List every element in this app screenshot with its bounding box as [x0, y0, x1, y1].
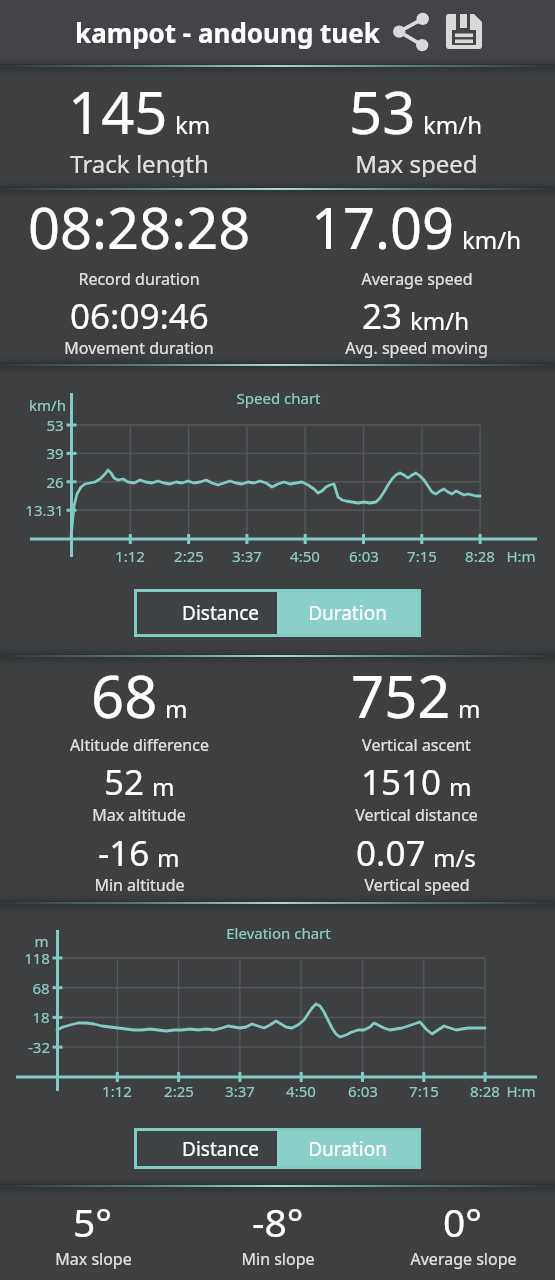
- staticText: 6:03: [349, 546, 379, 566]
- staticText: Speed chart: [236, 388, 321, 408]
- staticText: m: [449, 770, 472, 803]
- staticText: m: [165, 692, 188, 725]
- staticText: 53: [349, 72, 416, 151]
- staticText: km/h: [423, 108, 483, 141]
- staticText: 1510: [361, 758, 442, 806]
- button[interactable]: Duration: [277, 592, 418, 634]
- staticText: H:m: [506, 1081, 536, 1101]
- staticText: km/h: [410, 304, 470, 337]
- staticText: -16: [98, 829, 150, 877]
- staticText: Record duration: [78, 268, 200, 290]
- staticText: 68: [32, 978, 50, 998]
- staticText: kampot - andoung tuek: [75, 15, 380, 50]
- staticText: 8:28: [470, 1081, 500, 1101]
- staticText: Distance: [182, 1136, 259, 1162]
- staticText: 23: [362, 292, 403, 340]
- staticText: 06:09:46: [70, 292, 209, 340]
- staticText: -32: [28, 1037, 50, 1057]
- button[interactable]: Distance: [137, 1131, 277, 1166]
- staticText: m: [152, 770, 175, 803]
- staticText: Vertical distance: [355, 804, 478, 826]
- staticText: Max slope: [55, 1248, 132, 1270]
- staticText: 1:12: [115, 546, 145, 566]
- staticText: 6:03: [348, 1081, 378, 1101]
- staticText: 0.07: [356, 829, 426, 877]
- staticText: H:m: [506, 546, 536, 566]
- staticText: 2:25: [164, 1081, 194, 1101]
- staticText: 68: [91, 656, 158, 735]
- staticText: km/h: [462, 223, 522, 256]
- staticText: 1:12: [102, 1081, 132, 1101]
- staticText: 2:25: [174, 546, 204, 566]
- staticText: m: [34, 931, 49, 951]
- staticText: m/s: [433, 841, 476, 874]
- staticText: Vertical ascent: [362, 734, 471, 756]
- staticText: 08:28:28: [28, 189, 251, 265]
- staticText: 3:37: [225, 1081, 255, 1101]
- staticText: 0°: [443, 1195, 483, 1248]
- staticText: 4:50: [290, 546, 320, 566]
- staticText: m: [157, 841, 180, 874]
- staticText: 8:28: [465, 546, 495, 566]
- staticText: 13.31: [25, 500, 64, 520]
- staticText: 53: [46, 415, 64, 435]
- staticText: 3:37: [232, 546, 262, 566]
- staticText: Average slope: [410, 1248, 517, 1270]
- staticText: 18: [32, 1007, 50, 1027]
- staticText: Max speed: [355, 147, 478, 177]
- staticText: Altitude difference: [70, 734, 209, 756]
- staticText: km/h: [29, 395, 66, 415]
- staticText: Track length: [70, 147, 209, 177]
- staticText: 26: [46, 472, 64, 492]
- staticText: Elevation chart: [226, 923, 331, 943]
- staticText: km: [175, 108, 211, 141]
- staticText: 145: [68, 72, 168, 151]
- staticText: Min altitude: [94, 874, 185, 896]
- staticText: 52: [104, 758, 145, 806]
- staticText: Duration: [308, 1136, 387, 1162]
- button[interactable]: Distance: [137, 592, 277, 634]
- staticText: Avg. speed moving: [345, 337, 488, 359]
- button[interactable]: Duration: [277, 1131, 418, 1166]
- button[interactable]: [443, 11, 487, 55]
- staticText: 7:15: [407, 546, 437, 566]
- staticText: 752: [351, 656, 451, 735]
- staticText: Min slope: [241, 1248, 315, 1270]
- staticText: Duration: [308, 600, 387, 626]
- staticText: -8°: [252, 1195, 304, 1248]
- staticText: 118: [24, 948, 50, 968]
- staticText: 5°: [73, 1195, 113, 1248]
- staticText: Vertical speed: [364, 874, 470, 896]
- staticText: m: [458, 692, 481, 725]
- button[interactable]: [389, 10, 433, 56]
- staticText: Max altitude: [92, 804, 186, 826]
- staticText: 39: [46, 443, 64, 463]
- staticText: Average speed: [361, 268, 473, 290]
- staticText: Distance: [182, 600, 259, 626]
- staticText: Movement duration: [64, 337, 214, 359]
- staticText: 4:50: [286, 1081, 316, 1101]
- staticText: 7:15: [409, 1081, 439, 1101]
- staticText: 17.09: [311, 189, 455, 265]
